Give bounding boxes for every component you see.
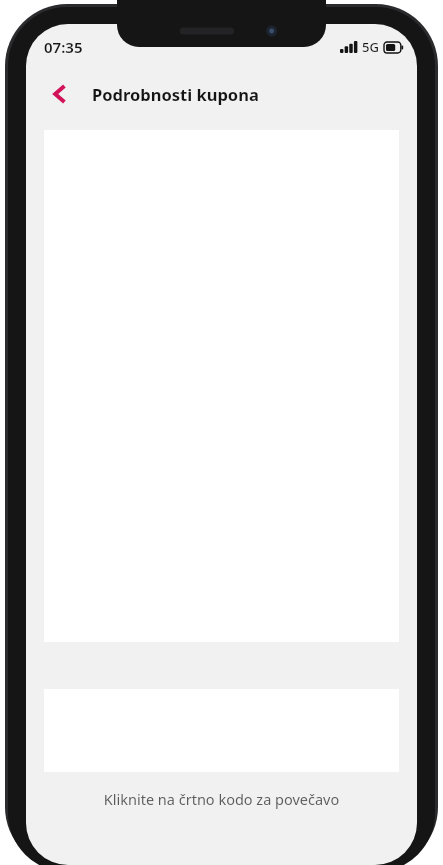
staticText: 07:35	[44, 37, 83, 57]
button[interactable]: Nazaj	[38, 72, 82, 116]
staticText: Kliknite na črtno kodo za povečavo	[26, 789, 417, 809]
staticText: Podrobnosti kupona	[92, 83, 259, 105]
staticText: 5G	[362, 38, 379, 56]
